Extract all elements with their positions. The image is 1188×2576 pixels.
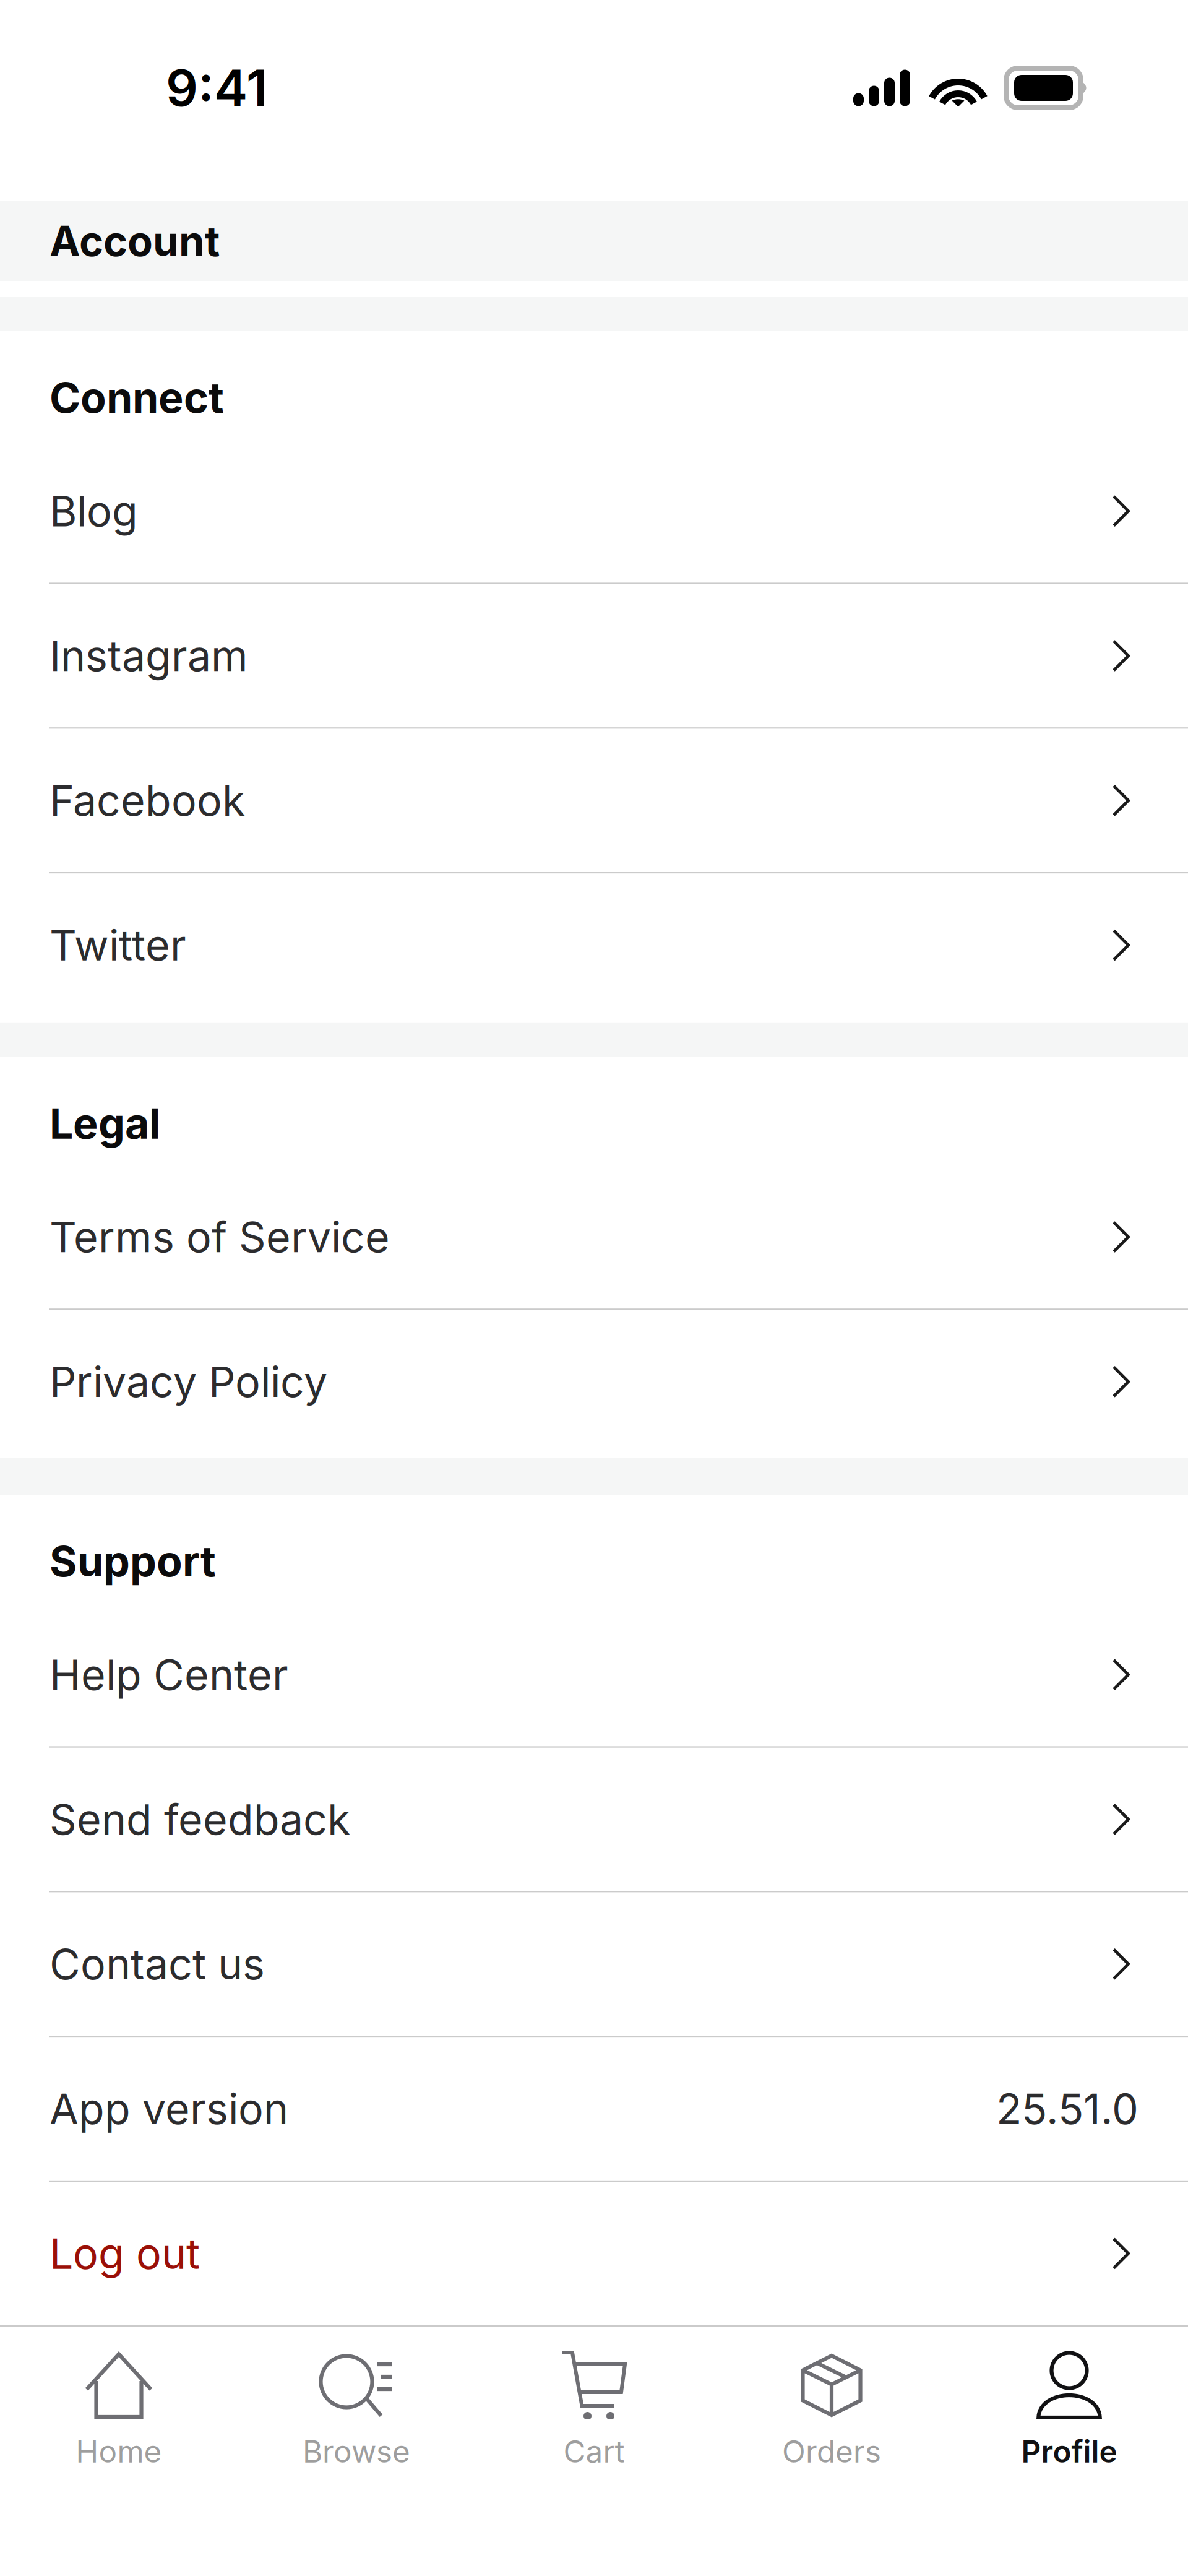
staticText: Send feedback bbox=[49, 1794, 350, 1845]
button[interactable]: Twitter bbox=[0, 874, 1188, 1017]
staticText: Log out bbox=[49, 2228, 200, 2279]
staticText: Instagram bbox=[49, 630, 248, 681]
staticText: Account bbox=[49, 216, 220, 266]
button[interactable]: Home bbox=[0, 2327, 238, 2576]
button[interactable]: Profile bbox=[950, 2327, 1188, 2576]
staticText: Terms of Service bbox=[49, 1211, 390, 1262]
button[interactable]: Cart bbox=[475, 2327, 713, 2576]
staticText: App version bbox=[49, 2083, 288, 2134]
staticText: Blog bbox=[49, 486, 138, 537]
staticText: Connect bbox=[49, 372, 224, 423]
staticText: Contact us bbox=[49, 1939, 265, 1990]
staticText: Browse bbox=[303, 2433, 410, 2470]
staticText: Orders bbox=[782, 2433, 881, 2470]
staticText: Privacy Policy bbox=[49, 1356, 327, 1407]
button[interactable]: Orders bbox=[713, 2327, 950, 2576]
staticText: Support bbox=[49, 1536, 216, 1587]
button[interactable]: Privacy Policy bbox=[0, 1310, 1188, 1453]
staticText: Profile bbox=[1021, 2433, 1117, 2470]
button[interactable]: Send feedback bbox=[0, 1748, 1188, 1891]
button[interactable]: Contact us bbox=[0, 1892, 1188, 2036]
staticText: Twitter bbox=[49, 920, 186, 971]
staticText: Cart bbox=[563, 2433, 625, 2470]
staticText: Facebook bbox=[49, 775, 245, 826]
staticText: Help Center bbox=[49, 1649, 288, 1700]
button[interactable]: Terms of Service bbox=[0, 1165, 1188, 1309]
staticText: Legal bbox=[49, 1098, 160, 1149]
button[interactable]: Help Center bbox=[0, 1603, 1188, 1746]
button[interactable]: Blog bbox=[0, 439, 1188, 583]
button[interactable]: Facebook bbox=[0, 729, 1188, 872]
staticText: 9:41 bbox=[166, 57, 267, 118]
button[interactable]: Browse bbox=[238, 2327, 475, 2576]
staticText: 25.51.0 bbox=[996, 2083, 1138, 2134]
button[interactable]: Instagram bbox=[0, 584, 1188, 727]
button[interactable]: Log out bbox=[0, 2182, 1188, 2325]
staticText: Home bbox=[76, 2433, 162, 2470]
